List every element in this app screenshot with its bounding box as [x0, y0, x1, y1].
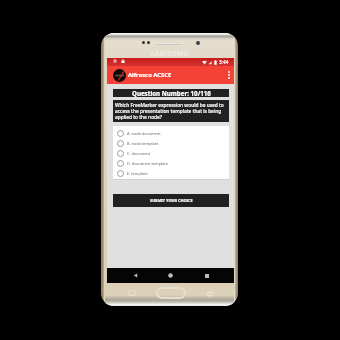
staticText: SAMSUNG — [150, 48, 190, 58]
button[interactable]: Home — [163, 268, 178, 283]
staticText: Which FreeMarker expression would be use… — [115, 102, 228, 120]
staticText: D. document.template — [127, 161, 168, 166]
button[interactable]: Recent apps — [199, 268, 214, 283]
staticText: 3:44 — [219, 59, 229, 66]
staticText: Question Number: 10/116 — [132, 89, 211, 97]
button[interactable]: More options — [223, 66, 234, 84]
button[interactable]: C. document — [113, 148, 229, 158]
staticText: E. template — [127, 171, 148, 176]
button[interactable]: A. node.document — [113, 128, 229, 138]
staticText: C. document — [127, 151, 151, 156]
button[interactable]: SUBMIT YOUR CHOICE — [113, 194, 229, 207]
button[interactable]: E. template — [113, 168, 229, 178]
staticText: Alfresco ACSCE — [128, 71, 172, 79]
staticText: A. node.document — [127, 131, 161, 136]
staticText: B. node.template — [127, 141, 159, 146]
button[interactable]: Back — [128, 268, 143, 283]
button[interactable]: B. node.template — [113, 138, 229, 148]
button[interactable]: D. document.template — [113, 158, 229, 168]
staticText: SUBMIT YOUR CHOICE — [150, 198, 193, 203]
